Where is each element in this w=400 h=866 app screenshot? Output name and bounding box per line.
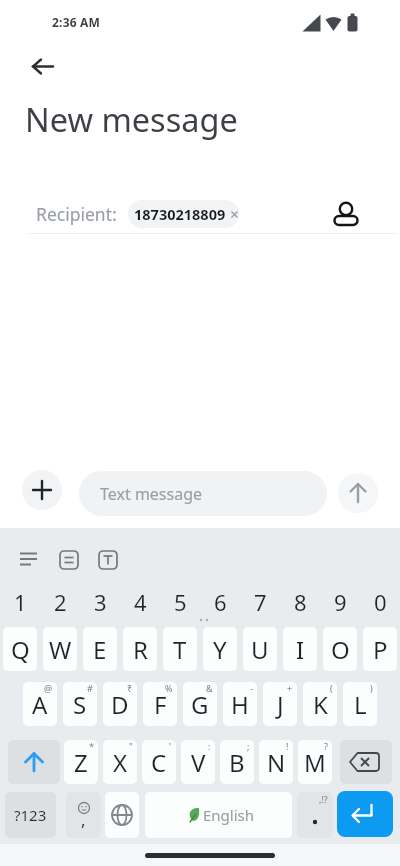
- staticText: R: [133, 633, 148, 666]
- button[interactable]: U: [243, 627, 277, 671]
- button[interactable]: 6: [200, 582, 240, 622]
- button[interactable]: ,: [66, 792, 101, 838]
- button[interactable]: ,!?: [297, 792, 333, 838]
- staticText: 8: [294, 587, 307, 617]
- staticText: O: [331, 633, 350, 666]
- staticText: 3: [94, 587, 107, 617]
- button[interactable]: T: [163, 627, 197, 671]
- button[interactable]: 4: [120, 582, 160, 622]
- button[interactable]: [12, 545, 46, 575]
- staticText: N: [267, 746, 286, 779]
- staticText: 1: [14, 587, 27, 617]
- staticText: ,: [81, 808, 86, 831]
- staticText: L: [354, 688, 367, 721]
- staticText: #: [87, 682, 93, 694]
- button[interactable]: 3: [80, 582, 120, 622]
- button[interactable]: I: [283, 627, 317, 671]
- staticText: !: [286, 740, 289, 752]
- button[interactable]: G: [183, 682, 217, 726]
- button[interactable]: Y: [203, 627, 237, 671]
- staticText: (: [330, 682, 333, 694]
- staticText: D: [111, 688, 129, 721]
- button[interactable]: M: [298, 740, 332, 784]
- staticText: 6: [214, 587, 227, 617]
- button[interactable]: X: [103, 740, 137, 784]
- button[interactable]: Text message: [79, 471, 327, 516]
- button[interactable]: C: [142, 740, 176, 784]
- button[interactable]: 18730218809: [128, 200, 239, 228]
- button[interactable]: W: [43, 627, 77, 671]
- button[interactable]: [105, 792, 139, 838]
- staticText: ,!?: [319, 793, 328, 805]
- button[interactable]: O: [323, 627, 357, 671]
- button[interactable]: [22, 470, 62, 510]
- button[interactable]: N: [259, 740, 293, 784]
- button[interactable]: English: [145, 792, 292, 838]
- staticText: %: [165, 682, 173, 694]
- button[interactable]: L: [343, 682, 377, 726]
- button[interactable]: E: [83, 627, 117, 671]
- button[interactable]: B: [220, 740, 254, 784]
- staticText: H: [231, 688, 249, 721]
- staticText: ?: [324, 740, 328, 752]
- staticText: P: [373, 633, 388, 666]
- staticText: Recipient:: [36, 202, 117, 226]
- button[interactable]: 2: [40, 582, 80, 622]
- staticText: :: [208, 740, 211, 752]
- staticText: English: [203, 805, 255, 825]
- staticText: F: [154, 688, 167, 721]
- staticText: ): [370, 682, 373, 694]
- staticText: Q: [11, 633, 30, 666]
- staticText: -: [250, 682, 253, 694]
- button[interactable]: [54, 545, 84, 575]
- button[interactable]: H: [223, 682, 257, 726]
- button[interactable]: [338, 473, 378, 513]
- button[interactable]: 0: [360, 582, 400, 622]
- button[interactable]: 9: [320, 582, 360, 622]
- button[interactable]: F: [143, 682, 177, 726]
- staticText: &: [206, 682, 213, 694]
- button[interactable]: [340, 740, 392, 784]
- button[interactable]: K: [303, 682, 337, 726]
- staticText: 2:36 AM: [52, 14, 101, 30]
- staticText: ': [169, 740, 172, 752]
- button[interactable]: R: [123, 627, 157, 671]
- button[interactable]: ?123: [5, 792, 56, 838]
- staticText: M: [304, 746, 326, 779]
- staticText: ?123: [14, 805, 47, 825]
- button[interactable]: [22, 48, 62, 84]
- staticText: G: [191, 688, 209, 721]
- staticText: A: [32, 688, 48, 721]
- button[interactable]: 7: [240, 582, 280, 622]
- button[interactable]: [8, 740, 60, 784]
- button[interactable]: 1: [0, 582, 40, 622]
- button[interactable]: P: [363, 627, 397, 671]
- staticText: W: [49, 633, 72, 666]
- staticText: I: [296, 633, 305, 666]
- staticText: 9: [334, 587, 347, 617]
- staticText: 5: [174, 587, 187, 617]
- button[interactable]: S: [63, 682, 97, 726]
- button[interactable]: [93, 545, 123, 575]
- button[interactable]: 8: [280, 582, 320, 622]
- staticText: *: [89, 740, 94, 752]
- staticText: B: [229, 746, 245, 779]
- staticText: U: [251, 633, 269, 666]
- staticText: Z: [74, 746, 88, 779]
- button[interactable]: 5: [160, 582, 200, 622]
- staticText: 4: [134, 587, 147, 617]
- staticText: 0: [374, 587, 387, 617]
- button[interactable]: V: [181, 740, 215, 784]
- staticText: Text message: [100, 483, 203, 505]
- button[interactable]: [337, 791, 393, 837]
- button[interactable]: A: [23, 682, 57, 726]
- button[interactable]: D: [103, 682, 137, 726]
- button[interactable]: Q: [3, 627, 37, 671]
- staticText: ₹: [127, 682, 133, 694]
- button[interactable]: [330, 192, 362, 230]
- staticText: J: [277, 688, 284, 721]
- button[interactable]: Z: [64, 740, 98, 784]
- button[interactable]: J: [263, 682, 297, 726]
- staticText: T: [173, 633, 187, 666]
- staticText: V: [191, 746, 206, 779]
